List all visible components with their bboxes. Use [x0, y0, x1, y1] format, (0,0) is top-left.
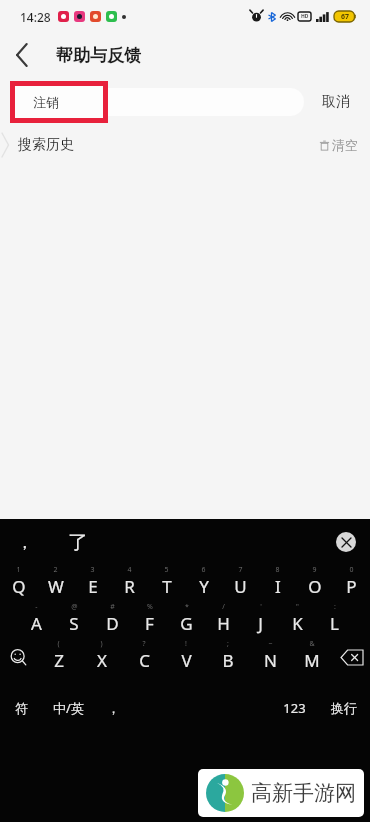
button[interactable]: ! [165, 639, 207, 676]
staticText: 0 [349, 565, 354, 575]
staticText: Q [12, 575, 26, 598]
button[interactable]: 删除 [333, 639, 370, 676]
staticText: I [275, 575, 281, 598]
staticText: : [334, 602, 336, 612]
staticText: ' [260, 602, 262, 612]
button[interactable]: ， [16, 532, 33, 553]
staticText: Y [199, 575, 209, 598]
staticText: # [110, 602, 115, 612]
button[interactable]: 了 [68, 530, 88, 555]
staticText: A [31, 612, 42, 635]
button[interactable]: 3 [74, 565, 111, 602]
staticText: M [304, 649, 320, 672]
button[interactable]: 换行 [318, 688, 370, 728]
staticText: G [180, 612, 193, 635]
staticText: V [181, 649, 192, 672]
staticText: / [222, 602, 225, 612]
staticText: W [48, 575, 64, 598]
staticText: 搜索历史 [18, 136, 74, 154]
staticText: J [258, 612, 263, 635]
button[interactable]: 6 [185, 565, 222, 602]
button[interactable]: 注销 [15, 86, 103, 118]
staticText: 中/英 [53, 699, 84, 717]
button[interactable]: 123 [271, 688, 318, 728]
staticText: F [145, 612, 154, 635]
button[interactable]: " [279, 602, 316, 639]
staticText: P [346, 575, 357, 598]
staticText: S [69, 612, 79, 635]
staticText: ! [185, 639, 187, 649]
staticText: 14:28 [20, 9, 51, 25]
button[interactable]: 8 [259, 565, 296, 602]
staticText: 67 [341, 12, 350, 22]
button[interactable]: ' [242, 602, 279, 639]
button[interactable]: ? [123, 639, 165, 676]
staticText: 取消 [322, 93, 350, 111]
staticText: B [222, 649, 234, 672]
button[interactable]: 关闭键盘 [336, 532, 356, 552]
button[interactable]: 中/英 [42, 688, 94, 728]
staticText: ; [227, 639, 229, 649]
staticText: 注销 [33, 94, 59, 110]
staticText: @ [71, 602, 78, 612]
button[interactable]: 0 [333, 565, 370, 602]
button[interactable]: # [93, 602, 131, 639]
button[interactable]: 清空 [319, 137, 358, 153]
button[interactable]: 符 [0, 688, 42, 728]
button[interactable]: 4 [111, 565, 148, 602]
staticText: 123 [283, 699, 306, 717]
staticText: U [234, 575, 247, 598]
staticText: HD [301, 13, 309, 20]
button[interactable] [14, 88, 304, 116]
staticText: X [97, 649, 107, 672]
button[interactable]: 7 [222, 565, 259, 602]
button[interactable]: 1 [0, 565, 37, 602]
staticText: - [35, 602, 38, 612]
button[interactable]: - [17, 602, 55, 639]
staticText: % [147, 602, 153, 612]
staticText: ) [100, 639, 103, 649]
staticText: 5 [164, 565, 169, 575]
button[interactable]: % [131, 602, 168, 639]
staticText: 4 [127, 565, 132, 575]
button[interactable]: 返回 [0, 33, 44, 77]
button[interactable]: & [291, 639, 333, 676]
button[interactable]: 9 [296, 565, 333, 602]
button[interactable]: ; [207, 639, 249, 676]
staticText: 2 [53, 565, 58, 575]
staticText: K [292, 612, 303, 635]
button[interactable]: ( [37, 639, 80, 676]
staticText: ( [57, 639, 60, 649]
button[interactable]: 5 [148, 565, 185, 602]
staticText: E [88, 575, 98, 598]
button[interactable]: ~ [249, 639, 291, 676]
button[interactable]: @ [55, 602, 93, 639]
staticText: 7 [238, 565, 243, 575]
button[interactable]: / [205, 602, 242, 639]
staticText: C [139, 649, 150, 672]
staticText: L [330, 612, 339, 635]
staticText: T [162, 575, 172, 598]
staticText: 帮助与反馈 [56, 45, 141, 66]
button[interactable]: * [168, 602, 205, 639]
staticText: 1 [16, 565, 21, 575]
staticText: 3 [90, 565, 95, 575]
button[interactable]: 取消 [308, 77, 364, 126]
staticText: * [185, 602, 189, 612]
staticText: 清空 [332, 137, 358, 153]
button[interactable]: 表情 [0, 639, 37, 676]
staticText: 6 [201, 565, 206, 575]
staticText: ， [107, 700, 120, 716]
staticText: R [124, 575, 135, 598]
button[interactable]: ) [80, 639, 123, 676]
staticText: Z [54, 649, 64, 672]
staticText: & [309, 639, 315, 649]
staticText: O [308, 575, 322, 598]
button[interactable]: ， [94, 688, 133, 728]
button[interactable]: 2 [37, 565, 74, 602]
staticText: ~ [268, 639, 273, 649]
staticText: 高新手游网 [251, 780, 356, 806]
staticText: 9 [312, 565, 317, 575]
button[interactable]: : [316, 602, 353, 639]
